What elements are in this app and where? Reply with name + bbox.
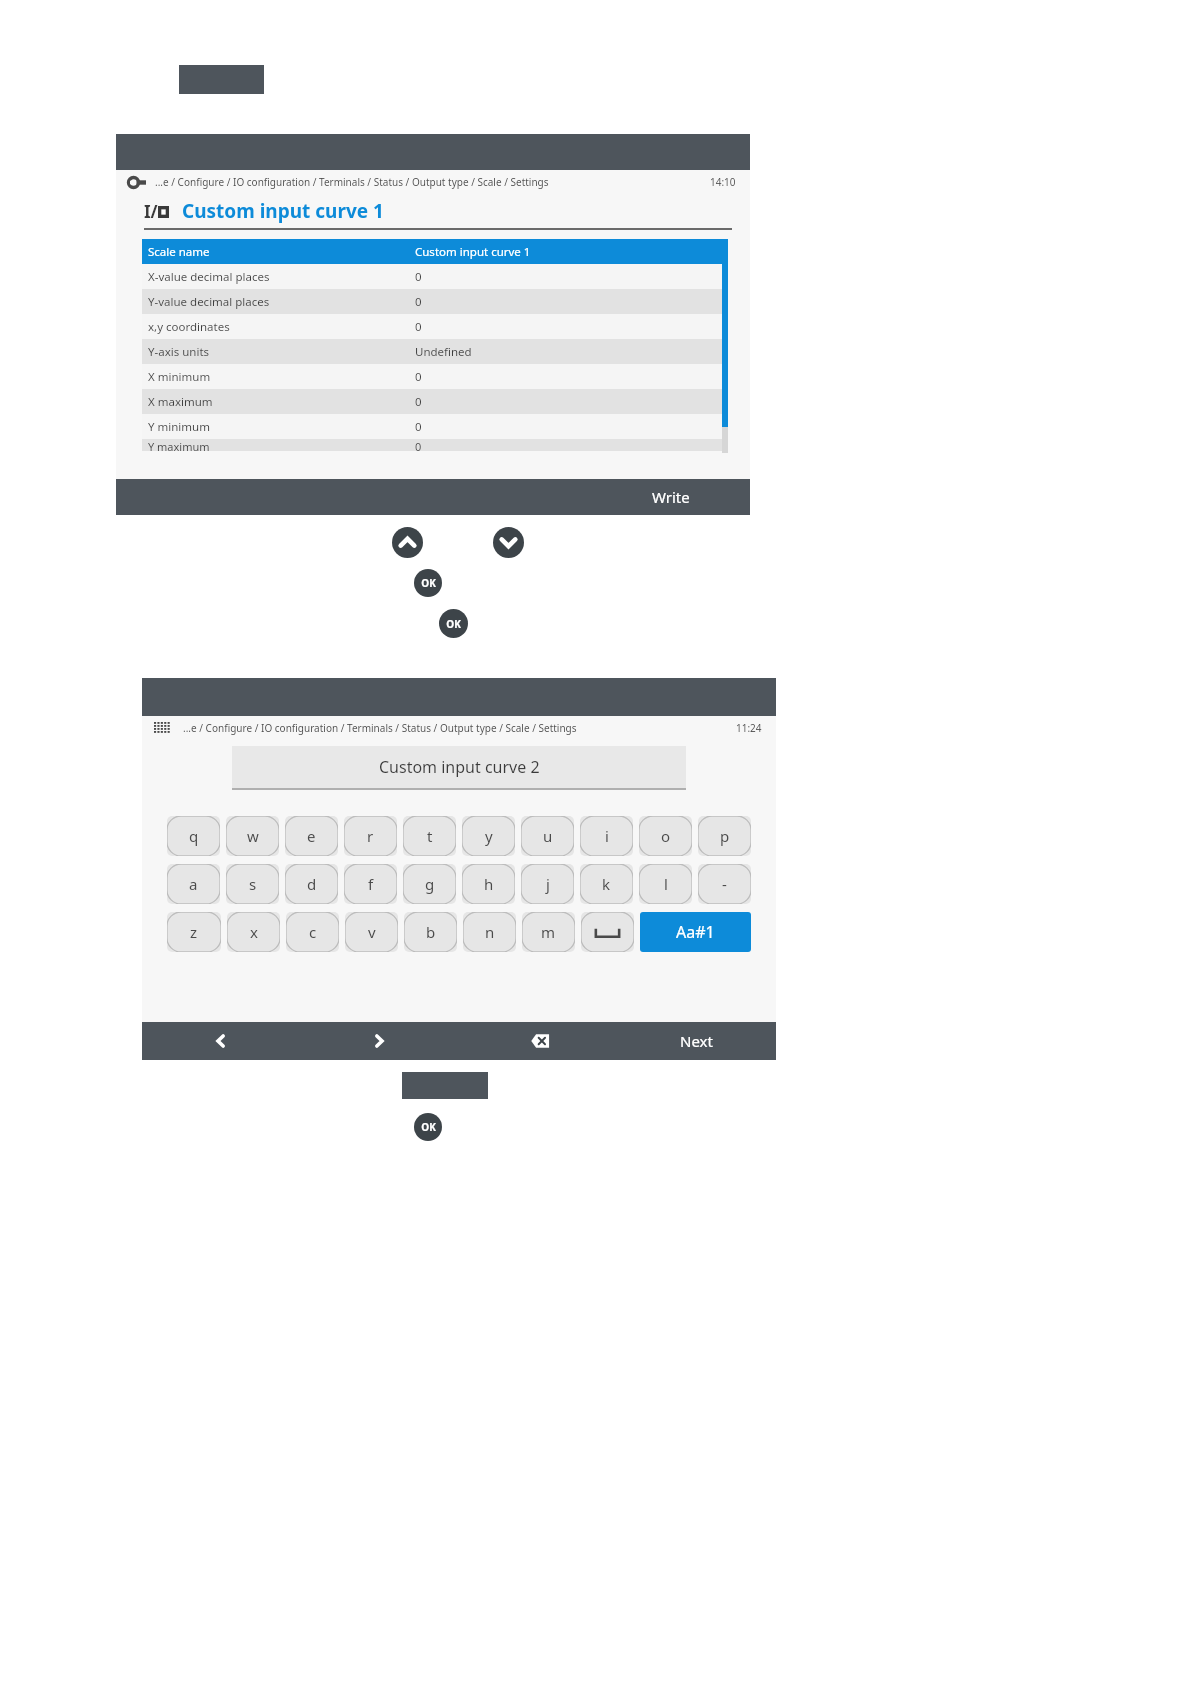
button[interactable]: X maximum xyxy=(142,389,722,414)
staticText: p xyxy=(720,826,730,846)
button[interactable]: p xyxy=(698,816,751,856)
button[interactable]: Write xyxy=(116,479,750,515)
staticText: m xyxy=(541,922,556,942)
staticText: X-value decimal places xyxy=(148,269,270,285)
staticText: 0 xyxy=(415,439,422,451)
button[interactable]: - xyxy=(698,864,751,904)
button[interactable]: w xyxy=(226,816,279,856)
button[interactable]: Scroll up xyxy=(392,527,423,558)
button[interactable]: X-value decimal places xyxy=(142,264,722,289)
button[interactable]: OK xyxy=(414,569,442,597)
staticText: s xyxy=(249,874,257,894)
button[interactable]: t xyxy=(403,816,456,856)
button[interactable]: z xyxy=(167,912,221,952)
button[interactable]: j xyxy=(521,864,574,904)
staticText: ...e / Configure / IO configuration / Te… xyxy=(155,175,549,189)
staticText: Scale name xyxy=(148,244,210,260)
staticText: w xyxy=(247,826,259,846)
button[interactable]: OK xyxy=(414,1113,442,1141)
button[interactable]: l xyxy=(639,864,692,904)
button[interactable]: f xyxy=(344,864,397,904)
staticText: Y maximum xyxy=(148,439,210,451)
button[interactable]: o xyxy=(639,816,692,856)
staticText: d xyxy=(307,874,317,894)
button[interactable]: n xyxy=(463,912,516,952)
staticText: Y-axis units xyxy=(148,344,210,360)
button[interactable]: m xyxy=(522,912,575,952)
staticText: h xyxy=(484,874,494,894)
staticText: X minimum xyxy=(148,369,211,385)
button[interactable]: Y-value decimal places xyxy=(142,289,722,314)
staticText: 0 xyxy=(415,294,422,310)
staticText: Next xyxy=(680,1031,713,1051)
staticText: 0 xyxy=(415,419,422,435)
staticText: Custom input curve 2 xyxy=(379,756,540,778)
staticText: g xyxy=(425,874,435,894)
staticText: Undefined xyxy=(415,344,472,360)
button[interactable]: x xyxy=(227,912,280,952)
button[interactable]: d xyxy=(285,864,338,904)
staticText: a xyxy=(189,874,198,894)
staticText: k xyxy=(602,874,611,894)
staticText: OK xyxy=(446,617,461,631)
staticText: I/ xyxy=(144,200,158,223)
staticText: Write xyxy=(652,487,690,507)
staticText: 0 xyxy=(415,394,422,410)
button[interactable]: h xyxy=(462,864,515,904)
button[interactable]: OK xyxy=(439,609,468,638)
button[interactable]: Space xyxy=(581,912,634,952)
button[interactable]: a xyxy=(167,864,220,904)
button[interactable]: g xyxy=(403,864,456,904)
staticText: t xyxy=(427,826,433,846)
staticText: Y minimum xyxy=(148,419,210,435)
staticText: 11:24 xyxy=(736,721,762,735)
button[interactable]: Scale name xyxy=(142,239,722,264)
button[interactable]: Backspace xyxy=(458,1022,617,1060)
staticText: Custom input curve 1 xyxy=(182,198,384,224)
staticText: b xyxy=(426,922,436,942)
button[interactable]: b xyxy=(404,912,457,952)
button[interactable]: Y minimum xyxy=(142,414,722,439)
staticText: Aa#1 xyxy=(676,921,715,943)
button[interactable]: c xyxy=(286,912,339,952)
button[interactable]: X minimum xyxy=(142,364,722,389)
button[interactable]: y xyxy=(462,816,515,856)
staticText: i xyxy=(605,826,609,846)
button[interactable]: Y-axis units xyxy=(142,339,722,364)
button[interactable]: Next character xyxy=(300,1022,458,1060)
staticText: n xyxy=(485,922,495,942)
button[interactable]: r xyxy=(344,816,397,856)
staticText: y xyxy=(485,826,493,846)
button[interactable]: q xyxy=(167,816,220,856)
staticText: z xyxy=(190,922,198,942)
button[interactable]: Previous xyxy=(142,1022,300,1060)
staticText: ...e / Configure / IO configuration / Te… xyxy=(183,721,577,735)
staticText: o xyxy=(661,826,671,846)
button[interactable]: k xyxy=(580,864,633,904)
button[interactable]: x,y coordinates xyxy=(142,314,722,339)
staticText: - xyxy=(722,874,727,894)
staticText: q xyxy=(189,826,199,846)
button[interactable]: Custom input curve 2 xyxy=(232,746,686,788)
button[interactable]: v xyxy=(345,912,398,952)
staticText: 0 xyxy=(415,369,422,385)
button[interactable]: Scroll down xyxy=(493,527,524,558)
staticText: OK xyxy=(421,576,436,590)
staticText: u xyxy=(543,826,553,846)
button[interactable]: u xyxy=(521,816,574,856)
staticText: j xyxy=(546,874,550,894)
button[interactable]: s xyxy=(226,864,279,904)
button[interactable]: Next xyxy=(617,1022,776,1060)
button[interactable]: Aa#1 xyxy=(640,912,751,952)
staticText: v xyxy=(368,922,376,942)
button[interactable]: i xyxy=(580,816,633,856)
staticText: Custom input curve 1 xyxy=(415,244,531,260)
button[interactable]: e xyxy=(285,816,338,856)
staticText: 0 xyxy=(415,269,422,285)
staticText: f xyxy=(368,874,374,894)
staticText: r xyxy=(367,826,374,846)
staticText: c xyxy=(309,922,317,942)
staticText: Y-value decimal places xyxy=(148,294,270,310)
